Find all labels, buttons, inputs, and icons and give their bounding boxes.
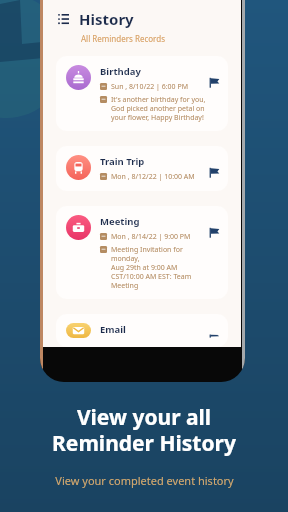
button[interactable]: Completed flag bbox=[207, 334, 220, 338]
staticText: Email bbox=[100, 323, 126, 336]
button[interactable]: Menu bbox=[56, 9, 241, 29]
staticText: View your completed event history bbox=[55, 473, 234, 488]
staticText: Mon , 8/14/22 | 9:00 PM bbox=[111, 232, 191, 242]
staticText: Meeting bbox=[100, 215, 140, 228]
staticText: All Reminders Records bbox=[81, 33, 166, 44]
button[interactable]: Meeting bbox=[56, 206, 228, 299]
button[interactable]: Completed flag bbox=[207, 76, 220, 89]
button[interactable]: Completed flag bbox=[207, 166, 220, 179]
staticText: It's another birthday for you, God picke… bbox=[111, 95, 206, 122]
button[interactable]: Birthday bbox=[56, 56, 228, 131]
button[interactable]: Train Trip bbox=[56, 146, 228, 191]
button[interactable]: Menu bbox=[56, 12, 70, 26]
button[interactable]: Email bbox=[56, 314, 228, 347]
staticText: Train Trip bbox=[100, 155, 145, 168]
staticText: Sun , 8/10/22 | 6:00 PM bbox=[111, 82, 189, 92]
staticText: History bbox=[79, 9, 134, 29]
staticText: Mon , 8/12/22 | 10:00 AM bbox=[111, 172, 195, 182]
staticText: Birthday bbox=[100, 65, 141, 78]
staticText: View your all Reminder History bbox=[52, 403, 236, 458]
button[interactable]: Completed flag bbox=[207, 226, 220, 239]
staticText: Meeting Invitation for monday, Aug 29th … bbox=[111, 245, 207, 290]
